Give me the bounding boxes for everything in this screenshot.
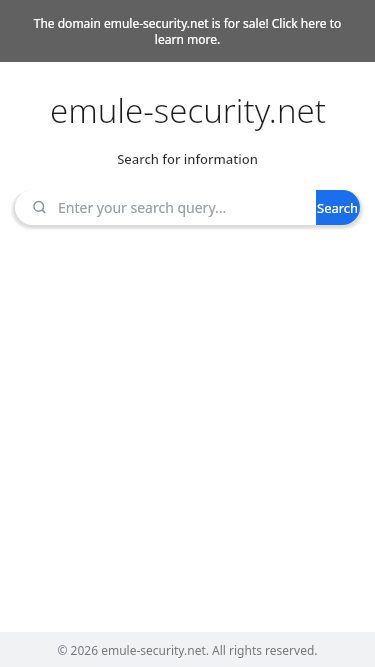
staticText: © 2026 emule-security.net. All rights re… [57,642,318,658]
staticText: Enter your search query... [58,198,316,217]
staticText: The domain emule-security.net is for sal… [18,15,357,48]
staticText: emule-security.net [50,88,326,133]
button[interactable]: Search [15,190,360,225]
staticText: Search [317,199,359,217]
button[interactable]: The domain emule-security.net is for sal… [0,0,375,62]
other: Search [32,200,48,216]
button[interactable]: Search [316,190,360,225]
staticText: Search for information [117,150,258,168]
